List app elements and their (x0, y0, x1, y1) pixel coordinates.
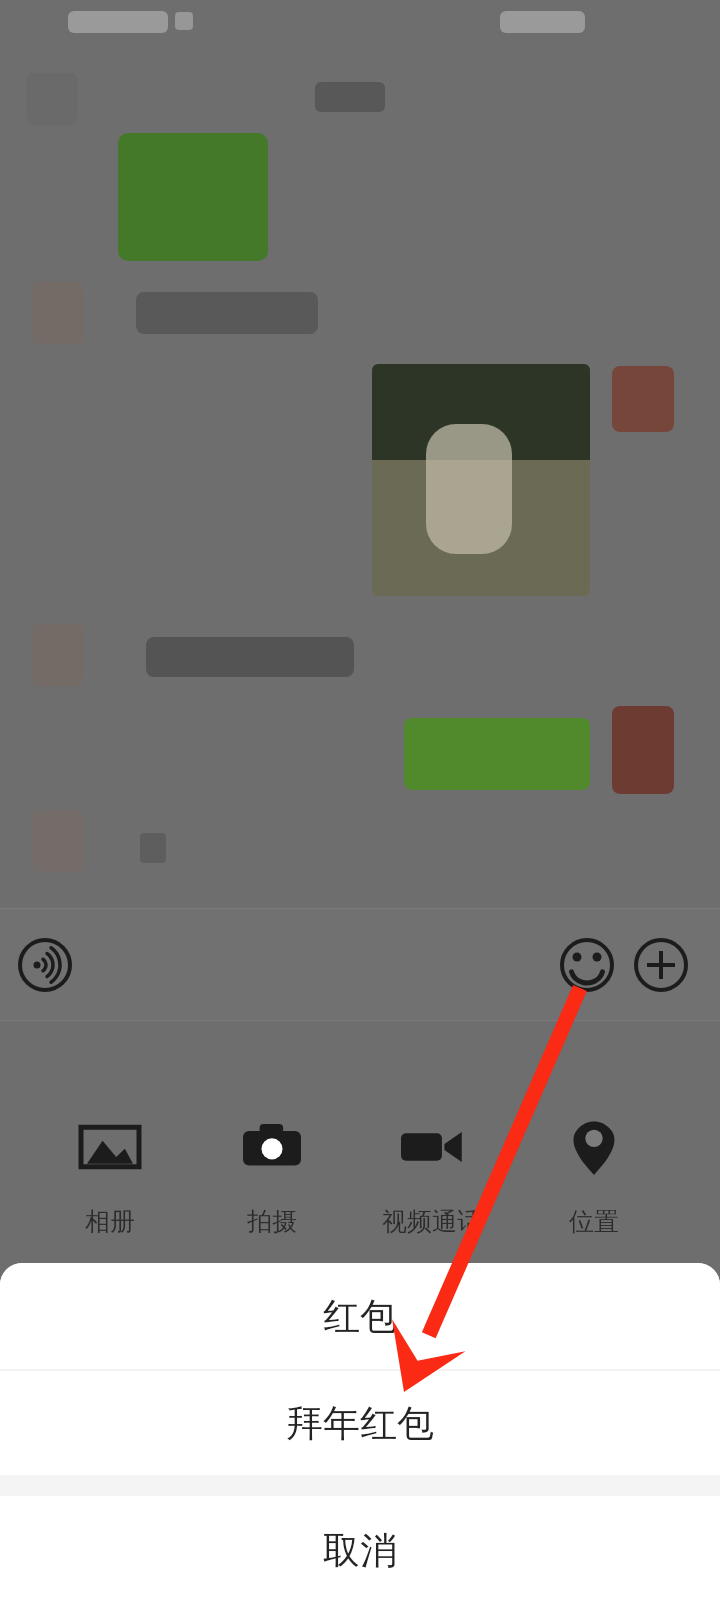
staticText: 红包 (323, 1293, 397, 1340)
staticText: 拍摄 (210, 1206, 334, 1237)
button[interactable]: 红包 (0, 1263, 720, 1369)
button[interactable]: More (634, 938, 688, 992)
staticText: 拜年红包 (286, 1400, 434, 1447)
button[interactable]: Voice input (18, 938, 72, 992)
staticText: 相册 (48, 1206, 172, 1237)
staticText: 取消 (323, 1527, 397, 1574)
staticText: 位置 (532, 1206, 656, 1237)
button[interactable]: 取消 (0, 1496, 720, 1600)
button[interactable]: 位置 (532, 1092, 656, 1237)
button[interactable]: 相册 (48, 1092, 172, 1237)
staticText: 视频通话 (370, 1206, 494, 1237)
button[interactable]: 视频通话 (370, 1092, 494, 1237)
button[interactable]: 拜年红包 (0, 1371, 720, 1475)
button[interactable]: 拍摄 (210, 1092, 334, 1237)
button[interactable]: Emoji (560, 938, 614, 992)
